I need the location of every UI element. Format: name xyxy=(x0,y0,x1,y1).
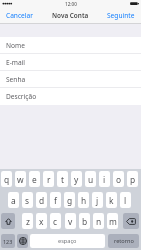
button[interactable]: j xyxy=(92,192,103,208)
button[interactable]: l xyxy=(120,192,131,208)
button[interactable]: q xyxy=(1,171,12,187)
button[interactable]: Shift xyxy=(1,213,15,229)
button[interactable]: u xyxy=(85,171,96,187)
staticText: E-mail xyxy=(6,58,26,67)
button[interactable]: n xyxy=(93,213,104,229)
button[interactable]: s xyxy=(22,192,33,208)
button[interactable]: r xyxy=(43,171,54,187)
staticText: d xyxy=(39,195,45,206)
button[interactable]: E-mail xyxy=(0,54,141,71)
button[interactable]: t xyxy=(57,171,68,187)
staticText: c xyxy=(53,216,58,227)
staticText: g xyxy=(67,195,73,206)
button[interactable]: e xyxy=(29,171,40,187)
button[interactable]: espaço xyxy=(30,234,105,248)
staticText: r xyxy=(47,174,51,185)
staticText: 123 xyxy=(3,238,13,245)
staticText: l xyxy=(124,195,127,206)
button[interactable]: i xyxy=(99,171,110,187)
button[interactable]: d xyxy=(36,192,47,208)
staticText: p xyxy=(130,174,136,185)
staticText: k xyxy=(109,195,114,206)
staticText: retorno xyxy=(114,237,134,245)
button[interactable]: Change keyboard xyxy=(17,234,28,248)
staticText: z xyxy=(26,216,30,227)
staticText: j xyxy=(96,195,99,206)
staticText: s xyxy=(25,195,30,206)
staticText: u xyxy=(88,174,94,185)
button[interactable]: Backspace xyxy=(123,213,139,229)
button[interactable]: c xyxy=(50,213,61,229)
staticText: h xyxy=(81,195,87,206)
button[interactable]: y xyxy=(71,171,82,187)
staticText: Descrição xyxy=(6,92,37,101)
button[interactable]: Numbers xyxy=(1,234,15,248)
staticText: Senha xyxy=(6,75,26,84)
button[interactable]: f xyxy=(50,192,61,208)
staticText: Nova Conta xyxy=(52,11,89,20)
staticText: e xyxy=(32,174,37,185)
button[interactable]: retorno xyxy=(108,234,139,248)
button[interactable]: x xyxy=(36,213,47,229)
button[interactable]: z xyxy=(22,213,33,229)
button[interactable]: b xyxy=(79,213,90,229)
button[interactable]: v xyxy=(65,213,76,229)
staticText: q xyxy=(4,174,10,185)
button[interactable]: g xyxy=(64,192,75,208)
staticText: n xyxy=(96,216,102,227)
staticText: Seguinte xyxy=(107,11,135,20)
button[interactable]: w xyxy=(15,171,26,187)
staticText: espaço xyxy=(58,237,77,245)
staticText: v xyxy=(68,216,73,227)
staticText: y xyxy=(74,174,79,185)
staticText: t xyxy=(61,174,65,185)
staticText: 12:00 xyxy=(65,1,77,7)
staticText: o xyxy=(116,174,122,185)
button[interactable]: Cancelar xyxy=(6,9,33,24)
staticText: m xyxy=(109,216,117,227)
staticText: a xyxy=(11,195,16,206)
button[interactable]: a xyxy=(8,192,19,208)
button[interactable]: p xyxy=(127,171,138,187)
staticText: w xyxy=(17,174,24,185)
button[interactable]: m xyxy=(107,213,118,229)
button[interactable]: Senha xyxy=(0,71,141,88)
staticText: Nome xyxy=(6,41,25,50)
staticText: i xyxy=(103,174,106,185)
button[interactable]: k xyxy=(106,192,117,208)
button[interactable]: Seguinte xyxy=(107,9,135,24)
button[interactable]: Nome xyxy=(0,37,141,54)
staticText: Cancelar xyxy=(6,11,33,20)
staticText: f xyxy=(54,195,57,206)
button[interactable]: h xyxy=(78,192,89,208)
staticText: b xyxy=(82,216,88,227)
button[interactable]: Descrição xyxy=(0,88,141,105)
staticText: x xyxy=(39,216,44,227)
button[interactable]: o xyxy=(113,171,124,187)
